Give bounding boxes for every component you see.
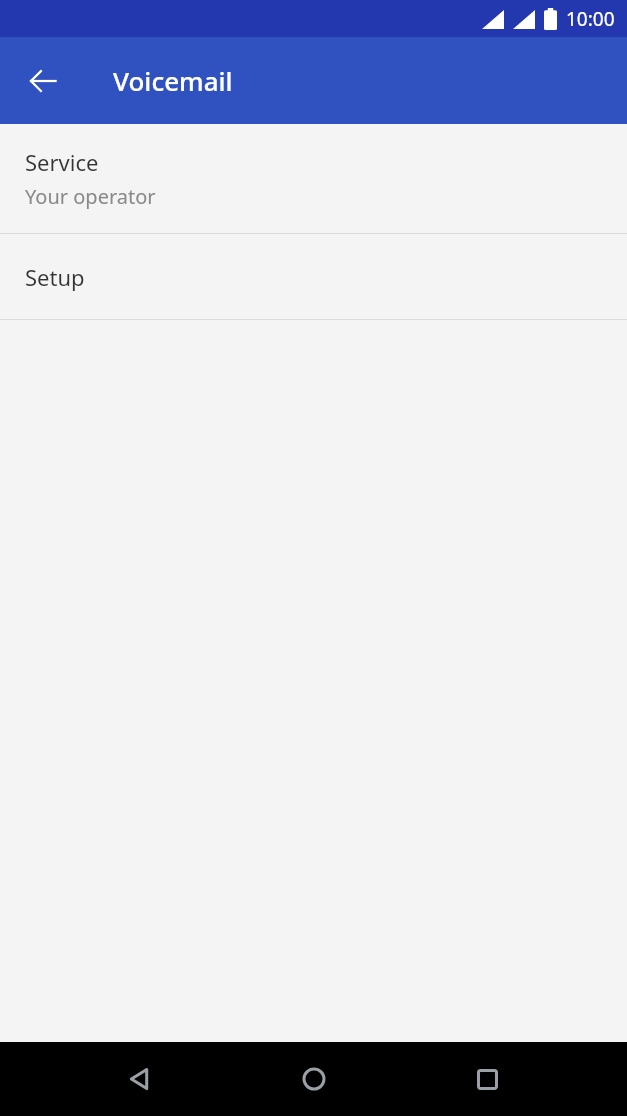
staticText: 10:00 [566, 6, 615, 32]
staticText: Service [25, 147, 99, 177]
button[interactable]: Service [0, 124, 627, 233]
button[interactable]: Back [110, 1051, 170, 1107]
button[interactable]: Home [284, 1051, 344, 1107]
staticText: Voicemail [113, 63, 233, 98]
staticText: Setup [25, 262, 85, 292]
button[interactable]: Setup [0, 234, 627, 319]
button[interactable]: Recent apps [457, 1051, 517, 1107]
button[interactable]: Back [15, 53, 71, 109]
staticText: Your operator [25, 183, 156, 210]
